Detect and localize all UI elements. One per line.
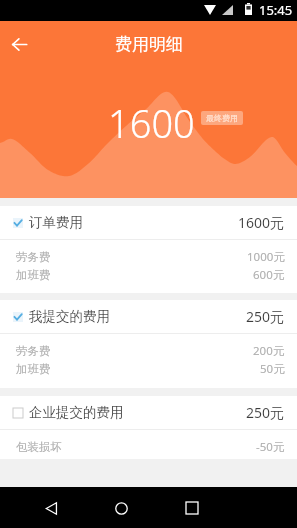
staticText: 劳务费 [16,344,51,358]
staticText: 1600 [108,97,195,149]
button[interactable]: Home [101,488,141,528]
staticText: 加班费 [16,362,51,376]
staticText: 250元 [246,307,285,326]
staticText: 15:45 [259,1,293,19]
staticText: 1000元 [247,249,285,265]
staticText: 费用明细 [115,34,183,55]
button[interactable]: 订单费用 [0,206,297,239]
staticText: 包装损坏 [16,440,62,454]
button[interactable]: 企业提交的费用 [0,396,297,429]
staticText: 50元 [260,361,285,377]
staticText: 250元 [246,403,285,422]
staticText: 加班费 [16,268,51,282]
staticText: 最终费用 [206,113,238,123]
staticText: 1600元 [238,213,285,232]
button[interactable]: Back [0,21,38,67]
button[interactable]: 我提交的费用 [0,300,297,333]
staticText: 600元 [253,267,285,283]
button[interactable]: Recents [172,488,212,528]
staticText: -50元 [256,439,285,455]
staticText: 企业提交的费用 [29,404,124,421]
staticText: 订单费用 [29,214,83,231]
staticText: 劳务费 [16,250,51,264]
staticText: 我提交的费用 [29,308,110,325]
staticText: 200元 [253,343,285,359]
button[interactable]: Back [31,488,71,528]
